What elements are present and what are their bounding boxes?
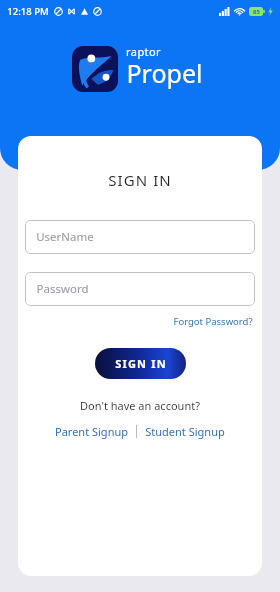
button[interactable]: Forgot Password? [171, 313, 255, 330]
staticText: SIGN IN [108, 170, 172, 190]
button[interactable]: Password [25, 272, 255, 306]
button[interactable]: SIGN IN [95, 348, 186, 379]
staticText: raptor [126, 44, 161, 59]
staticText: UserName [36, 229, 94, 245]
staticText: Propel [126, 56, 203, 90]
button[interactable]: Student Signup [145, 424, 225, 439]
staticText: SIGN IN [115, 356, 167, 371]
staticText: 12:18 PM [7, 5, 49, 18]
button[interactable]: Parent Signup [55, 424, 128, 439]
staticText: Don't have an account? [80, 398, 200, 413]
staticText: 85 [253, 8, 260, 16]
staticText: Password [36, 281, 89, 297]
button[interactable]: UserName [25, 220, 255, 254]
